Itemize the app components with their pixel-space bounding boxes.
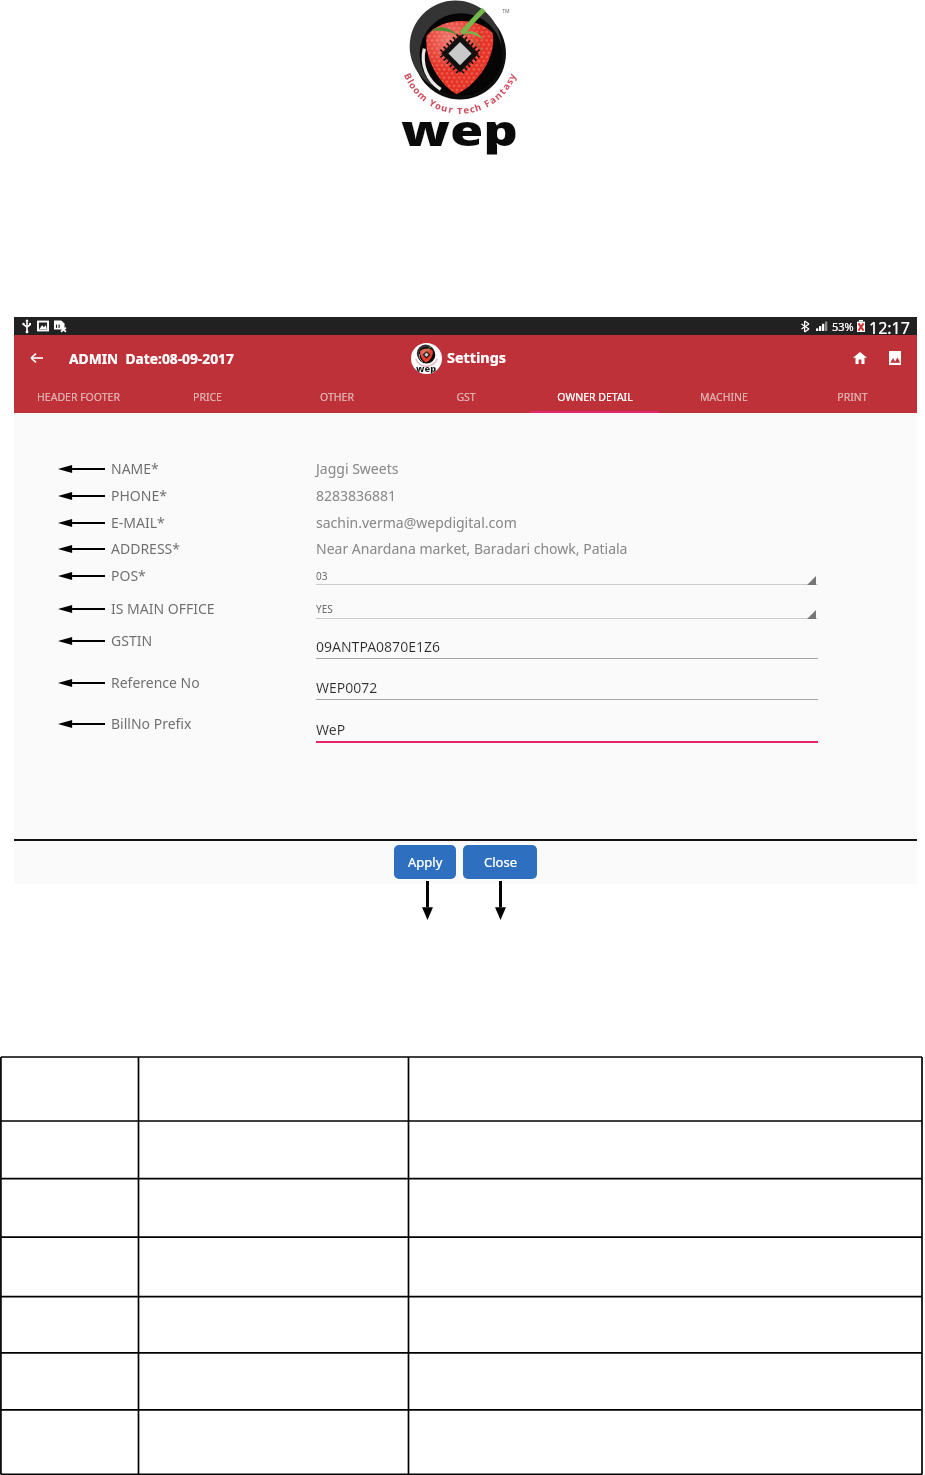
staticText: 53% <box>832 319 854 334</box>
staticText: BillNo Prefix <box>111 714 192 733</box>
staticText: GST <box>456 390 476 404</box>
button[interactable]: 09ANTPA0870E1Z6 <box>316 630 818 659</box>
staticText: ADDRESS* <box>111 539 180 558</box>
staticText: sachin.verma@wepdigital.com <box>316 513 517 532</box>
staticText: PRINT <box>837 390 868 404</box>
button[interactable]: Gallery <box>881 344 909 372</box>
staticText: 12:17 <box>869 317 910 335</box>
staticText: YES <box>316 602 333 616</box>
staticText: 09ANTPA0870E1Z6 <box>316 637 440 656</box>
button[interactable]: Apply <box>394 845 456 879</box>
button[interactable]: YES <box>316 598 818 619</box>
button[interactable]: OTHER <box>272 381 401 413</box>
button[interactable]: HEADER FOOTER <box>14 381 143 413</box>
button[interactable]: WeP <box>316 713 818 743</box>
staticText: Jaggi Sweets <box>316 459 399 478</box>
staticText: OWNER DETAIL <box>557 390 633 404</box>
staticText: Apply <box>408 853 443 871</box>
staticText: ADMIN Date:08-09-2017 <box>69 349 234 368</box>
button[interactable]: Back <box>24 345 50 371</box>
staticText: 03 <box>316 569 328 583</box>
staticText: GSTIN <box>111 631 153 650</box>
button[interactable]: 03 <box>316 565 818 585</box>
button[interactable]: GST <box>401 381 530 413</box>
button[interactable]: Close <box>463 845 537 879</box>
staticText: PRICE <box>193 390 222 404</box>
staticText: Settings <box>447 348 506 368</box>
staticText: E-MAIL* <box>111 513 165 532</box>
staticText: OTHER <box>320 390 354 404</box>
staticText: MACHINE <box>700 390 748 404</box>
staticText: Near Anardana market, Baradari chowk, Pa… <box>316 539 628 558</box>
staticText: HEADER FOOTER <box>37 390 120 404</box>
staticText: WeP <box>316 720 346 739</box>
staticText: IS MAIN OFFICE <box>111 599 215 618</box>
button[interactable]: OWNER DETAIL <box>530 381 659 413</box>
button[interactable]: PRICE <box>143 381 272 413</box>
button[interactable]: PRINT <box>788 381 917 413</box>
staticText: NAME* <box>111 459 159 478</box>
staticText: Close <box>484 853 517 871</box>
staticText: PHONE* <box>111 486 167 505</box>
staticText: Reference No <box>111 673 200 692</box>
button[interactable]: WEP0072 <box>316 672 818 700</box>
staticText: 8283836881 <box>316 486 397 505</box>
staticText: WEP0072 <box>316 678 378 697</box>
button[interactable]: MACHINE <box>659 381 788 413</box>
staticText: POS* <box>111 566 146 585</box>
button[interactable]: Home <box>846 344 874 372</box>
